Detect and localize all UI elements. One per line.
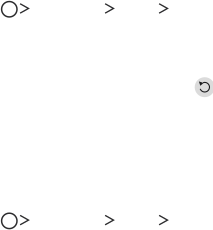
button[interactable]: Reload bbox=[195, 77, 213, 97]
staticText: Documents bbox=[28, 200, 97, 230]
button[interactable]: Documents bbox=[28, 0, 113, 18]
button[interactable]: Drafts bbox=[113, 212, 167, 230]
button[interactable]: Home bbox=[2, 212, 28, 230]
button[interactable]: Drafts bbox=[113, 0, 167, 18]
button[interactable]: Home bbox=[2, 0, 28, 18]
staticText: Documents bbox=[28, 0, 97, 30]
button[interactable]: Documents bbox=[28, 212, 113, 230]
